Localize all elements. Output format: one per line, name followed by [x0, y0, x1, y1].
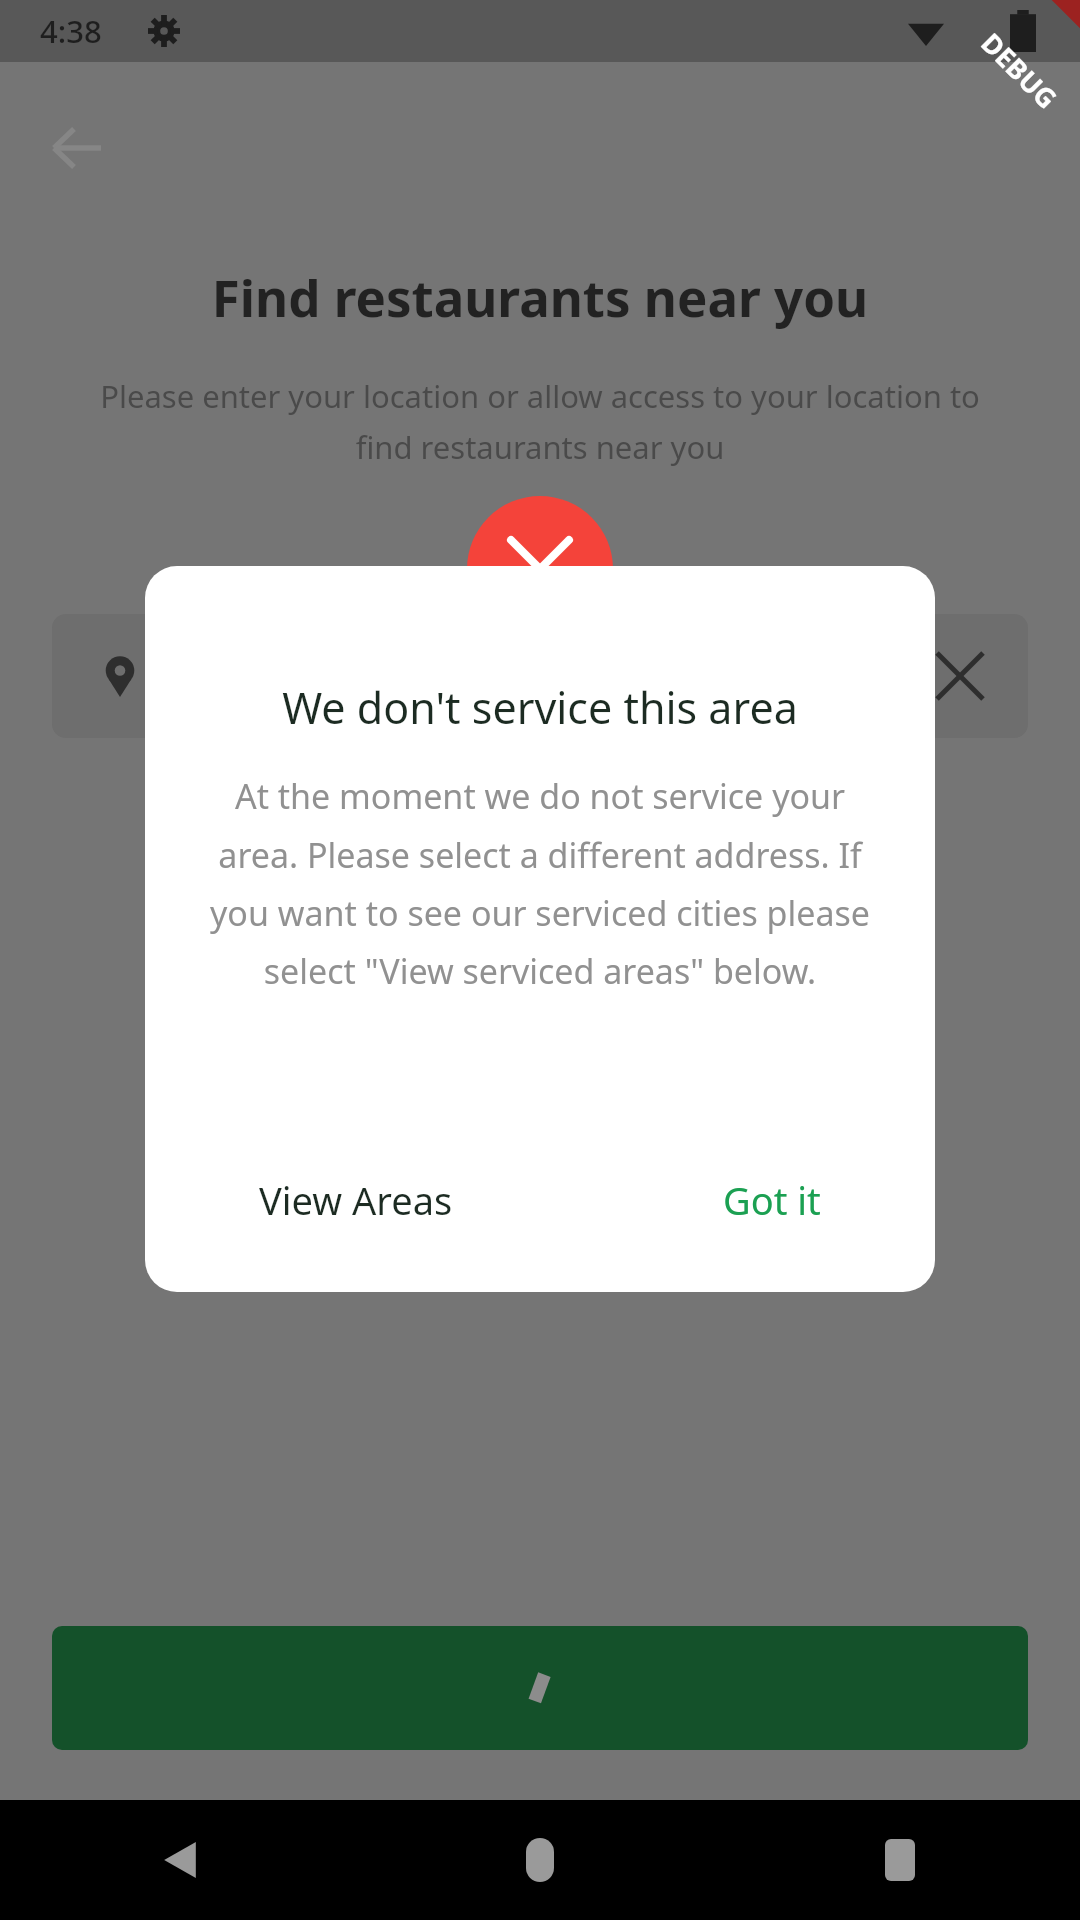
button[interactable]: Location [52, 614, 1028, 738]
button[interactable]: Home [502, 1822, 578, 1898]
staticText: We don't service this area [171, 678, 909, 737]
button[interactable]: View Areas [241, 1160, 471, 1240]
staticText: Find restaurants near you [44, 262, 1036, 331]
staticText: Please enter your location or allow acce… [70, 375, 1010, 468]
button[interactable]: Back [142, 1822, 218, 1898]
staticText: 4:38 [40, 10, 102, 52]
button[interactable]: Navigate up [26, 98, 126, 198]
staticText: Got it [723, 1174, 821, 1226]
button[interactable]: Got it [705, 1160, 839, 1240]
other: Location [78, 634, 162, 718]
button[interactable]: Clear [916, 632, 1004, 720]
button[interactable]: Recents [862, 1822, 938, 1898]
button[interactable] [52, 1626, 1028, 1750]
other: Error [467, 496, 613, 642]
staticText: DEBUG [973, 24, 1065, 116]
staticText: View Areas [259, 1174, 453, 1226]
staticText: At the moment we do not service your are… [199, 773, 881, 993]
